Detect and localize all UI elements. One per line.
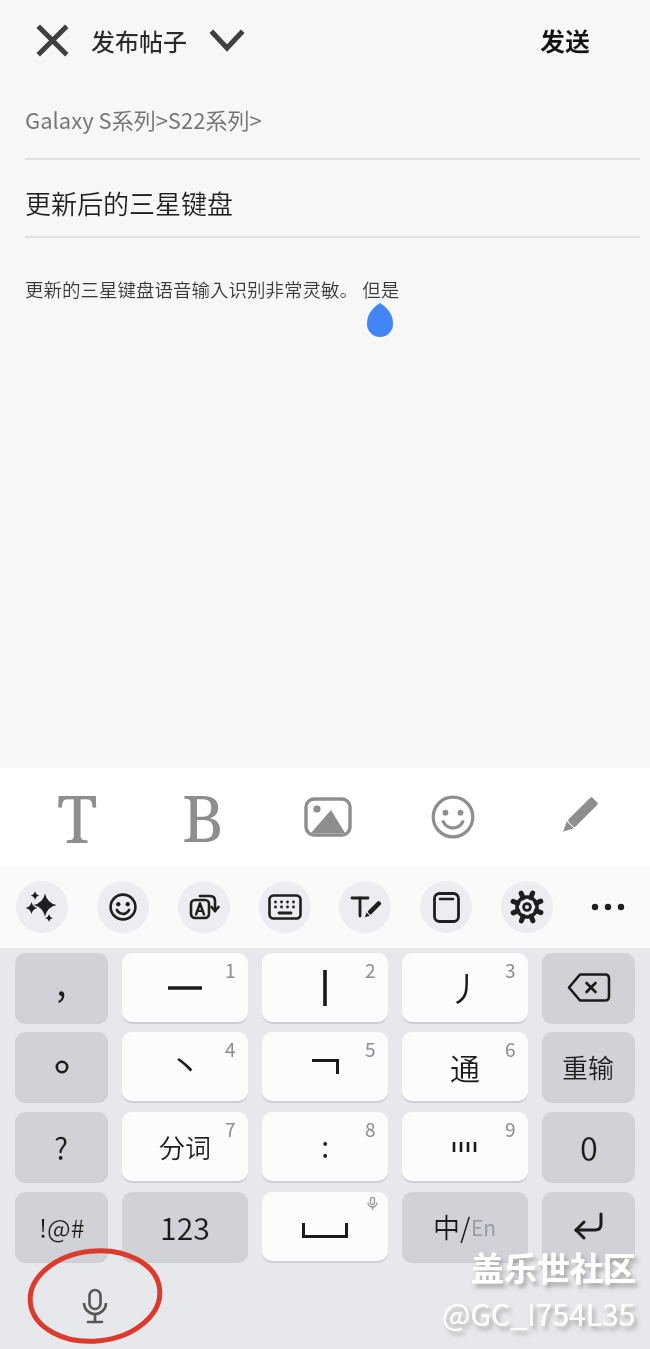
staticText: B (182, 774, 224, 861)
button[interactable]: 丶 (122, 1032, 248, 1101)
button[interactable]: !@# (15, 1192, 108, 1261)
button[interactable] (390, 768, 515, 866)
staticText: 2 (365, 956, 376, 984)
staticText: 更新的三星键盘语音输入识别非常灵敏。 但是 (25, 276, 400, 303)
staticText: 通 (450, 1045, 480, 1088)
button[interactable]: : (262, 1112, 388, 1181)
staticText: 0 (580, 1124, 598, 1170)
button[interactable]: 分词 (122, 1112, 248, 1181)
staticText: 更新后的三星键盘 (25, 184, 234, 222)
button[interactable] (97, 881, 149, 933)
staticText: 4 (225, 1035, 236, 1063)
staticText: 5 (365, 1035, 376, 1063)
staticText: 3 (505, 956, 516, 984)
staticText: 丿 (448, 963, 482, 1012)
staticText: 8 (365, 1115, 376, 1143)
button[interactable]: 发布帖子 (91, 23, 242, 58)
button[interactable]: Galaxy S系列>S22系列> (0, 80, 650, 158)
staticText: T (57, 772, 98, 862)
button[interactable] (501, 881, 553, 933)
button[interactable]: 0 (542, 1112, 635, 1181)
button[interactable]: , (15, 953, 108, 1022)
button[interactable]: 1 (122, 953, 248, 1022)
button[interactable] (178, 881, 230, 933)
staticText: 7 (225, 1115, 236, 1143)
button[interactable]: 5 (262, 1032, 388, 1101)
staticText: 丶 (168, 1040, 202, 1089)
staticText: 9 (505, 1115, 516, 1143)
button[interactable]: 发送 (540, 22, 650, 58)
staticText: 123 (160, 1205, 210, 1248)
staticText: ? (54, 1125, 69, 1168)
staticText: Galaxy S系列>S22系列> (25, 103, 262, 135)
button[interactable]: 丿 (402, 953, 528, 1022)
button[interactable]: 2 (262, 953, 388, 1022)
button[interactable]: T (14, 768, 140, 866)
button[interactable]: 重输 (542, 1032, 635, 1101)
staticText: @GC_I754L35 (442, 1291, 636, 1334)
button[interactable] (265, 768, 390, 866)
button[interactable] (542, 953, 635, 1022)
button[interactable]: ? (15, 1112, 108, 1181)
button[interactable] (15, 1032, 108, 1101)
button[interactable] (420, 881, 472, 933)
button[interactable]: 9 (402, 1112, 528, 1181)
staticText: : (321, 1123, 330, 1166)
staticText: !@# (39, 1209, 85, 1245)
button[interactable]: B (140, 768, 265, 866)
staticText: 1 (225, 956, 236, 984)
button[interactable] (582, 881, 634, 933)
staticText: , (56, 953, 67, 1007)
button[interactable]: 123 (122, 1192, 248, 1261)
button[interactable]: 更新后的三星键盘 (0, 160, 650, 236)
button[interactable] (542, 1192, 635, 1261)
staticText: 分词 (159, 1128, 212, 1166)
button[interactable] (259, 881, 311, 933)
button[interactable] (16, 881, 68, 933)
button[interactable]: 更新的三星键盘语音输入识别非常灵敏。 但是 (0, 238, 650, 768)
staticText: 重输 (562, 1048, 615, 1086)
button[interactable] (515, 768, 640, 866)
staticText: 发布帖子 (91, 23, 187, 58)
button[interactable] (33, 21, 71, 59)
staticText: 中/ (433, 1207, 471, 1246)
button[interactable] (262, 1192, 388, 1261)
staticText: En (471, 1212, 497, 1242)
button[interactable]: 中/ (402, 1192, 528, 1261)
button[interactable]: 通 (402, 1032, 528, 1101)
staticText: 6 (505, 1035, 516, 1063)
button[interactable] (339, 881, 391, 933)
staticText: 盖乐世社区 (471, 1243, 636, 1291)
staticText: 发送 (540, 22, 591, 58)
